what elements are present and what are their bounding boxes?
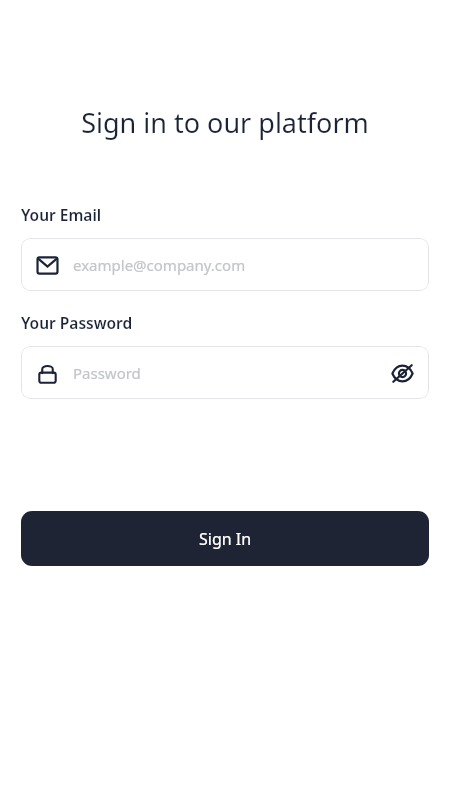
button[interactable]: Sign In [21, 511, 429, 566]
button[interactable]: Password [21, 346, 429, 399]
staticText: Password [73, 363, 390, 383]
staticText: Your Password [21, 312, 133, 333]
staticText: Your Email [21, 204, 102, 225]
staticText: example@company.com [73, 255, 414, 275]
staticText: Sign In [199, 528, 252, 550]
button[interactable]: Show password [390, 361, 414, 385]
button[interactable]: example@company.com [21, 238, 429, 291]
staticText: Sign in to our platform [0, 104, 450, 141]
